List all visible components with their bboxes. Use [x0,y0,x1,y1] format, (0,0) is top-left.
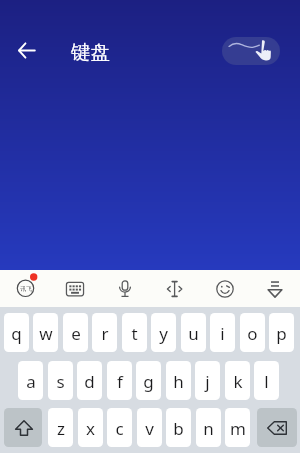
button[interactable]: z [48,408,73,447]
button[interactable]: Shift [4,408,42,447]
button[interactable]: i [210,313,235,352]
staticText: s [56,370,65,393]
button[interactable]: j [195,361,220,400]
button[interactable]: Backspace [257,408,297,447]
button[interactable]: e [63,313,88,352]
staticText: p [276,322,287,345]
staticText: r [101,322,109,345]
staticText: h [173,370,184,393]
button[interactable]: b [166,408,191,447]
button[interactable]: u [181,313,206,352]
button[interactable]: Move cursor [162,276,188,302]
button[interactable]: Voice input [112,276,138,302]
staticText: m [230,417,246,440]
staticText: a [26,370,36,393]
button[interactable]: n [196,408,221,447]
staticText: g [143,370,154,393]
button[interactable]: a [18,361,43,400]
staticText: v [145,417,154,440]
button[interactable]: w [33,313,58,352]
staticText: 讯飞 [20,285,32,293]
button[interactable]: Back [10,34,42,66]
button[interactable]: g [136,361,161,400]
staticText: u [188,322,199,345]
staticText: e [71,322,81,345]
button[interactable]: c [107,408,132,447]
button[interactable]: Keyboard layout [62,276,88,302]
staticText: 键盘 [71,40,110,65]
staticText: q [11,322,22,345]
staticText: x [86,417,95,440]
staticText: i [220,322,225,345]
staticText: n [203,417,214,440]
staticText: w [39,322,53,345]
staticText: z [57,417,65,440]
button[interactable]: k [225,361,250,400]
button[interactable]: m [225,408,250,447]
button[interactable]: l [254,361,279,400]
staticText: b [173,417,184,440]
button[interactable]: d [77,361,102,400]
button[interactable]: p [269,313,294,352]
button[interactable]: h [166,361,191,400]
button[interactable]: Handwriting gesture [222,37,280,65]
button[interactable]: v [137,408,162,447]
staticText: d [84,370,95,393]
button[interactable]: Emoji [212,276,238,302]
staticText: f [117,370,123,393]
button[interactable]: s [48,361,73,400]
staticText: k [233,370,243,393]
button[interactable]: x [78,408,103,447]
staticText: t [131,322,138,345]
button[interactable]: Hide keyboard [262,276,288,302]
button[interactable]: o [240,313,265,352]
button[interactable]: Input method settings [11,270,40,299]
button[interactable]: y [151,313,176,352]
staticText: c [115,417,124,440]
staticText: o [247,322,258,345]
button[interactable]: f [107,361,132,400]
button[interactable]: q [4,313,29,352]
staticText: j [205,370,210,393]
button[interactable]: t [122,313,147,352]
button[interactable]: r [92,313,117,352]
staticText: y [159,322,168,345]
staticText: l [264,370,269,393]
